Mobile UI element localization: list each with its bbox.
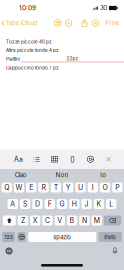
staticText: Q xyxy=(4,183,9,192)
button[interactable]: Cambia lingua xyxy=(2,246,16,256)
staticText: M xyxy=(94,216,100,225)
button[interactable]: Non xyxy=(41,169,83,181)
button[interactable]: M xyxy=(91,215,102,225)
staticText: Non xyxy=(55,171,68,179)
staticText: Tozze piccole 40 pz xyxy=(6,39,52,44)
button[interactable]: 123 xyxy=(2,232,15,242)
button[interactable]: Formato xyxy=(12,149,25,169)
staticText: Z xyxy=(21,216,25,225)
button[interactable]: Dettatura xyxy=(108,246,122,256)
button[interactable]: Fine xyxy=(104,16,121,30)
button[interactable]: Fotocamera xyxy=(84,149,97,169)
staticText: 22pz xyxy=(66,56,78,61)
staticText: V xyxy=(57,216,62,225)
staticText: A xyxy=(10,200,15,208)
button[interactable]: N xyxy=(79,215,89,225)
staticText: invio xyxy=(104,233,116,241)
staticText: O xyxy=(103,183,108,192)
staticText: Io xyxy=(100,171,106,179)
staticText: U xyxy=(78,183,83,192)
button[interactable]: Z xyxy=(18,215,28,225)
staticText: I xyxy=(92,183,94,192)
staticText: X xyxy=(33,216,38,225)
staticText: G xyxy=(59,200,64,208)
staticText: R xyxy=(42,183,46,192)
staticText: S xyxy=(23,200,27,208)
staticText: 123 xyxy=(4,234,12,240)
button[interactable]: Io xyxy=(83,169,124,181)
button[interactable]: P xyxy=(112,182,122,192)
staticText: spazio xyxy=(53,233,71,241)
button[interactable]: Elenco di controllo xyxy=(30,149,43,169)
button[interactable]: W xyxy=(14,182,24,192)
button[interactable]: Cancella xyxy=(104,215,121,225)
staticText: E xyxy=(29,183,33,192)
staticText: Aa xyxy=(14,155,23,163)
button[interactable]: spazio xyxy=(28,232,96,242)
button[interactable]: V xyxy=(55,215,65,225)
button[interactable]: B xyxy=(67,215,77,225)
button[interactable]: Y xyxy=(63,182,73,192)
button[interactable]: G xyxy=(57,199,67,209)
button[interactable]: C xyxy=(42,215,53,225)
button[interactable]: U xyxy=(75,182,86,192)
staticText: Fine xyxy=(105,19,119,27)
staticText: N xyxy=(82,216,87,225)
staticText: 3G xyxy=(100,5,107,11)
button[interactable]: K xyxy=(94,199,104,209)
button[interactable]: Condividi xyxy=(79,16,90,29)
button[interactable]: A xyxy=(8,199,18,209)
staticText: K xyxy=(96,200,101,208)
staticText: J xyxy=(85,200,89,208)
button[interactable]: T xyxy=(51,182,61,192)
staticText: W xyxy=(15,183,22,192)
button[interactable]: Nascondi tastiera xyxy=(102,149,115,169)
staticText: L xyxy=(109,200,113,208)
staticText: P xyxy=(115,183,119,192)
button[interactable]: F xyxy=(45,199,55,209)
button[interactable]: D xyxy=(32,199,43,209)
button[interactable]: L xyxy=(106,199,116,209)
staticText: T xyxy=(54,183,58,192)
staticText: Piattini xyxy=(6,56,21,62)
button[interactable]: Altre opzioni xyxy=(90,16,101,29)
staticText: C xyxy=(45,216,50,225)
button[interactable]: I xyxy=(88,182,98,192)
staticText: Y xyxy=(66,183,71,192)
staticText: Tutte iCloud xyxy=(5,19,37,27)
button[interactable]: Collabora xyxy=(63,16,74,29)
staticText: B xyxy=(70,216,75,225)
staticText: F xyxy=(48,200,52,208)
button[interactable]: Maiuscole xyxy=(3,215,16,225)
button[interactable]: X xyxy=(30,215,40,225)
staticText: Altre piccole tonde 4 pz xyxy=(6,47,59,53)
button[interactable]: Emoji xyxy=(17,232,26,242)
button[interactable]: H xyxy=(69,199,79,209)
button[interactable]: S xyxy=(20,199,30,209)
button[interactable]: Allegato xyxy=(66,149,79,169)
button[interactable]: R xyxy=(38,182,49,192)
button[interactable]: Ciao xyxy=(0,169,41,181)
staticText: D xyxy=(35,200,40,208)
button[interactable]: Tutte iCloud xyxy=(0,16,37,30)
button[interactable]: invio xyxy=(99,232,122,242)
staticText: H xyxy=(72,200,77,208)
button[interactable]: Nota condivisa xyxy=(52,16,63,29)
button[interactable]: Tabella xyxy=(48,149,61,169)
button[interactable]: Q xyxy=(1,182,12,192)
staticText: 10:09 xyxy=(19,4,36,12)
staticText: Ciao xyxy=(15,171,27,179)
button[interactable]: E xyxy=(26,182,36,192)
button[interactable]: O xyxy=(100,182,110,192)
staticText: Cappuccino tondo 7 pz xyxy=(6,65,59,71)
button[interactable]: J xyxy=(81,199,92,209)
